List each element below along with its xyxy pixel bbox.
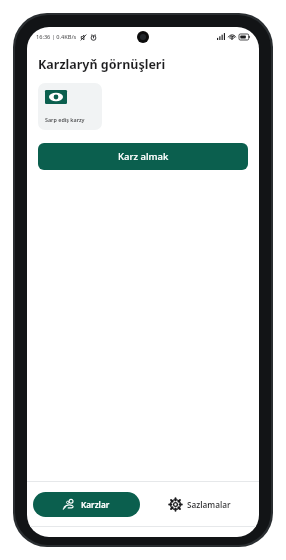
other: Settings <box>169 498 182 511</box>
staticText: Sarp ediş karzy <box>45 116 85 123</box>
staticText: 16:36 | 0.4KB/s <box>36 33 77 41</box>
button[interactable]: Loans <box>33 492 140 517</box>
button[interactable]: Consumer loan <box>38 83 102 130</box>
button[interactable]: Settings <box>146 492 253 517</box>
staticText: Karzlaryň görnüşleri <box>38 56 166 73</box>
button[interactable]: Karz almak <box>38 143 248 170</box>
staticText: Karz almak <box>118 150 169 163</box>
staticText: Sazlamalar <box>187 499 231 510</box>
other: Loans <box>63 498 76 511</box>
staticText: Karzlar <box>81 499 110 510</box>
other: Consumer loan <box>45 90 67 104</box>
